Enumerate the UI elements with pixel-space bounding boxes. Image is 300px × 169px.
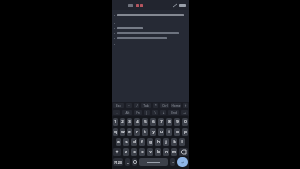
- button[interactable]: r: [134, 128, 140, 136]
- button[interactable]: o: [174, 128, 180, 136]
- button[interactable]: p: [182, 128, 188, 136]
- button[interactable]: Space: [139, 158, 168, 166]
- button[interactable]: /: [134, 103, 139, 108]
- staticText: f: [141, 139, 143, 145]
- staticText: ?123: [114, 160, 122, 165]
- staticText: 1: [114, 119, 117, 125]
- button[interactable]: j: [163, 138, 169, 146]
- button[interactable]: q: [113, 128, 118, 136]
- button[interactable]: Shift: [113, 148, 121, 156]
- button[interactable]: v: [147, 148, 153, 156]
- staticText: r: [136, 129, 138, 135]
- button[interactable]: Ctrl: [160, 103, 169, 108]
- button[interactable]: Alt: [122, 110, 132, 115]
- button[interactable]: .: [170, 158, 175, 166]
- button[interactable]: k: [171, 138, 177, 146]
- staticText: e: [128, 129, 131, 135]
- button[interactable]: |: [144, 110, 150, 115]
- button[interactable]: ?123: [113, 158, 123, 166]
- button[interactable]: 1: [113, 118, 118, 126]
- button[interactable]: s: [123, 138, 129, 146]
- button[interactable]: Esc: [113, 103, 124, 108]
- staticText: t: [144, 129, 146, 135]
- staticText: q: [114, 129, 117, 135]
- staticText: v: [149, 149, 152, 155]
- staticText: ↓: [162, 111, 165, 115]
- button[interactable]: End: [168, 110, 179, 115]
- button[interactable]: z: [123, 148, 129, 156]
- button[interactable]: *: [153, 103, 158, 108]
- button[interactable]: a: [116, 138, 121, 146]
- button[interactable]: u: [158, 128, 164, 136]
- staticText: a: [117, 139, 120, 145]
- button[interactable]: d: [131, 138, 137, 146]
- button[interactable]: h: [155, 138, 161, 146]
- staticText: 0: [184, 119, 187, 125]
- button[interactable]: f: [139, 138, 145, 146]
- button[interactable]: Backspace: [179, 148, 188, 156]
- staticText: 8: [168, 119, 171, 125]
- button[interactable]: →: [181, 110, 188, 115]
- button[interactable]: Enter: [177, 157, 188, 167]
- staticText: 4: [136, 119, 139, 125]
- staticText: p: [184, 129, 187, 135]
- button[interactable]: i: [166, 128, 172, 136]
- button[interactable]: c: [139, 148, 145, 156]
- button[interactable]: m: [171, 148, 177, 156]
- staticText: Tab: [143, 104, 149, 108]
- button[interactable]: 0: [182, 118, 188, 126]
- staticText: l: [181, 139, 183, 145]
- staticText: 3: [128, 119, 131, 125]
- staticText: z: [125, 149, 127, 155]
- button[interactable]: 8: [166, 118, 172, 126]
- staticText: c: [141, 149, 144, 155]
- button[interactable]: 3: [127, 118, 132, 126]
- staticText: k: [173, 139, 176, 145]
- staticText: Alt: [125, 111, 130, 115]
- staticText: ↵: [181, 160, 185, 165]
- button[interactable]: x: [131, 148, 137, 156]
- button[interactable]: g: [147, 138, 153, 146]
- button[interactable]: -: [113, 110, 120, 115]
- staticText: /: [136, 104, 138, 108]
- button[interactable]: Tab: [141, 103, 151, 108]
- staticText: j: [165, 139, 167, 145]
- staticText: 9: [176, 119, 179, 125]
- button[interactable]: ~: [126, 103, 132, 108]
- staticText: Esc: [116, 104, 121, 108]
- button[interactable]: 5: [142, 118, 148, 126]
- button[interactable]: \: [152, 110, 158, 115]
- button[interactable]: Home: [171, 103, 181, 108]
- button[interactable]: 6: [150, 118, 156, 126]
- staticText: ~: [128, 104, 130, 108]
- button[interactable]: 9: [174, 118, 180, 126]
- button[interactable]: e: [127, 128, 132, 136]
- button[interactable]: 4: [134, 118, 140, 126]
- staticText: y: [152, 129, 155, 135]
- button[interactable]: ↓: [160, 110, 166, 115]
- button[interactable]: ,: [125, 158, 130, 166]
- button[interactable]: b: [155, 148, 161, 156]
- button[interactable]: ↑: [183, 103, 188, 108]
- button[interactable]: w: [120, 128, 125, 136]
- staticText: 6: [152, 119, 155, 125]
- staticText: *: [155, 104, 157, 108]
- staticText: ,: [127, 159, 129, 165]
- staticText: |: [146, 111, 148, 115]
- button[interactable]: Fn: [134, 110, 142, 115]
- button[interactable]: y: [150, 128, 156, 136]
- staticText: ↑: [184, 104, 187, 108]
- button[interactable]: l: [179, 138, 185, 146]
- button[interactable]: t: [142, 128, 148, 136]
- staticText: x: [133, 149, 136, 155]
- staticText: m: [172, 149, 176, 155]
- staticText: b: [157, 149, 160, 155]
- button[interactable]: n: [163, 148, 169, 156]
- button[interactable]: 2: [120, 118, 125, 126]
- staticText: 5: [144, 119, 147, 125]
- staticText: u: [160, 129, 163, 135]
- button[interactable]: 7: [158, 118, 164, 126]
- staticText: →: [183, 111, 186, 115]
- staticText: 7: [160, 119, 163, 125]
- button[interactable]: Emoji: [132, 158, 137, 166]
